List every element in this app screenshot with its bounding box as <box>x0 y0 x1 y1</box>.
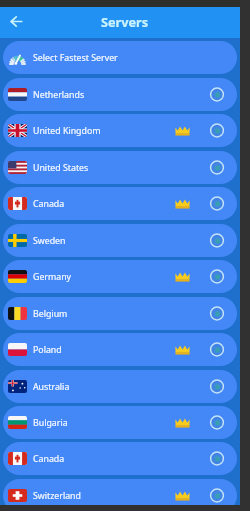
button[interactable]: Sweden <box>3 224 237 257</box>
staticText: United States <box>33 162 89 174</box>
button[interactable]: Back <box>4 9 28 33</box>
staticText: Belgium <box>33 308 68 320</box>
button[interactable]: United States <box>3 151 237 184</box>
button[interactable]: Switzerland <box>3 479 237 511</box>
staticText: Australia <box>33 381 70 393</box>
button[interactable]: Australia <box>3 370 237 403</box>
button[interactable]: United Kingdom <box>3 114 237 147</box>
staticText: Switzerland <box>33 490 81 502</box>
staticText: Bulgaria <box>33 417 68 429</box>
button[interactable]: Bulgaria <box>3 406 237 439</box>
staticText: Canada <box>33 453 65 465</box>
button[interactable]: Belgium <box>3 297 237 330</box>
button[interactable]: Canada <box>3 442 237 475</box>
staticText: Select Fastest Server <box>33 52 118 64</box>
staticText: Netherlands <box>33 89 85 101</box>
button[interactable]: Netherlands <box>3 78 237 111</box>
button[interactable]: Canada <box>3 187 237 220</box>
button[interactable]: Select Fastest Server <box>3 41 237 74</box>
staticText: Canada <box>33 198 65 210</box>
staticText: United Kingdom <box>33 125 101 137</box>
staticText: Germany <box>33 271 72 283</box>
staticText: Poland <box>33 344 62 356</box>
staticText: Servers <box>101 13 149 30</box>
button[interactable]: Germany <box>3 260 237 293</box>
button[interactable]: Poland <box>3 333 237 366</box>
staticText: Sweden <box>33 235 66 247</box>
